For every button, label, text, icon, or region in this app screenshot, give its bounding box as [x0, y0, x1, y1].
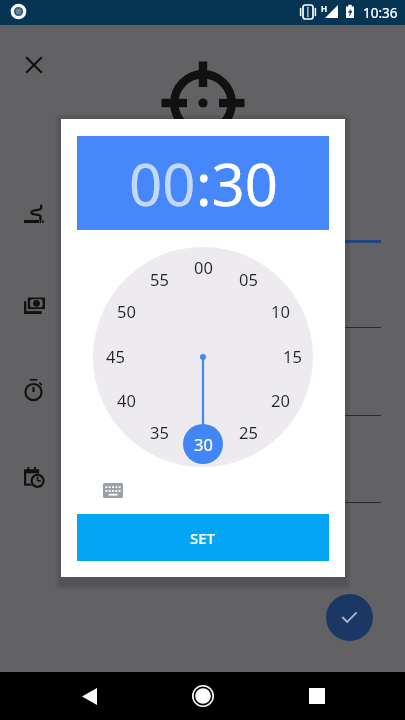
staticText: 25	[239, 421, 258, 443]
button[interactable]: Switch to keyboard input	[95, 472, 131, 508]
button[interactable]: 40	[111, 389, 141, 411]
button[interactable]: 00	[188, 256, 218, 278]
staticText: 10:36	[363, 4, 398, 22]
button[interactable]: Recent apps	[293, 672, 341, 720]
button[interactable]: Back	[65, 672, 113, 720]
button[interactable]: 50	[111, 300, 141, 322]
button[interactable]: 10	[265, 300, 295, 322]
staticText: 35	[150, 421, 169, 443]
staticText: 40	[117, 389, 136, 411]
staticText: H	[321, 3, 328, 14]
staticText: 10	[271, 300, 290, 322]
button[interactable]: Timer	[13, 368, 55, 410]
button[interactable]: 45	[100, 345, 130, 367]
button[interactable]: Confirm	[326, 594, 373, 641]
staticText: :30	[196, 144, 278, 223]
button[interactable]: Home	[179, 672, 227, 720]
button[interactable]: 25	[233, 421, 263, 443]
staticText: 20	[271, 389, 290, 411]
button[interactable]: 20	[265, 389, 295, 411]
button[interactable]: 15	[277, 345, 307, 367]
button[interactable]: Schedule	[13, 456, 55, 498]
button[interactable]: Cigarettes	[13, 193, 55, 235]
staticText: 55	[150, 268, 169, 290]
button[interactable]: 55	[144, 268, 174, 290]
button[interactable]: Money	[13, 284, 55, 326]
staticText: SET	[190, 528, 216, 548]
staticText: 05	[239, 268, 258, 290]
staticText: 30	[194, 433, 213, 455]
staticText: 00	[194, 256, 213, 278]
staticText: 50	[117, 300, 136, 322]
staticText: 45	[106, 345, 125, 367]
staticText: 15	[283, 345, 302, 367]
button[interactable]: Close	[14, 45, 54, 85]
button[interactable]: 35	[144, 421, 174, 443]
button[interactable]: SET	[77, 514, 329, 561]
button[interactable]: 00	[77, 136, 329, 230]
button[interactable]: 05	[233, 268, 263, 290]
button[interactable]: 30	[188, 433, 218, 455]
staticText: 00	[129, 144, 196, 223]
